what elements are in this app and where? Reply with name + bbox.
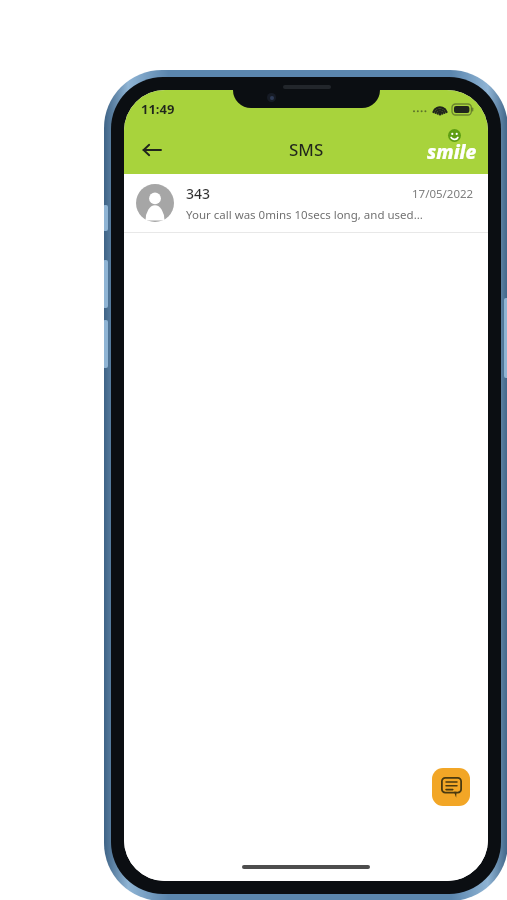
- staticText: 17/05/2022: [412, 186, 474, 202]
- button[interactable]: New message: [432, 768, 470, 806]
- staticText: smile: [427, 139, 477, 165]
- staticText: SMS: [289, 138, 324, 161]
- staticText: 343: [186, 184, 412, 203]
- button[interactable]: 343: [124, 174, 488, 232]
- staticText: Your call was 0mins 10secs long, and use…: [186, 207, 423, 223]
- button[interactable]: Back: [130, 128, 174, 172]
- staticText: 11:49: [141, 100, 175, 118]
